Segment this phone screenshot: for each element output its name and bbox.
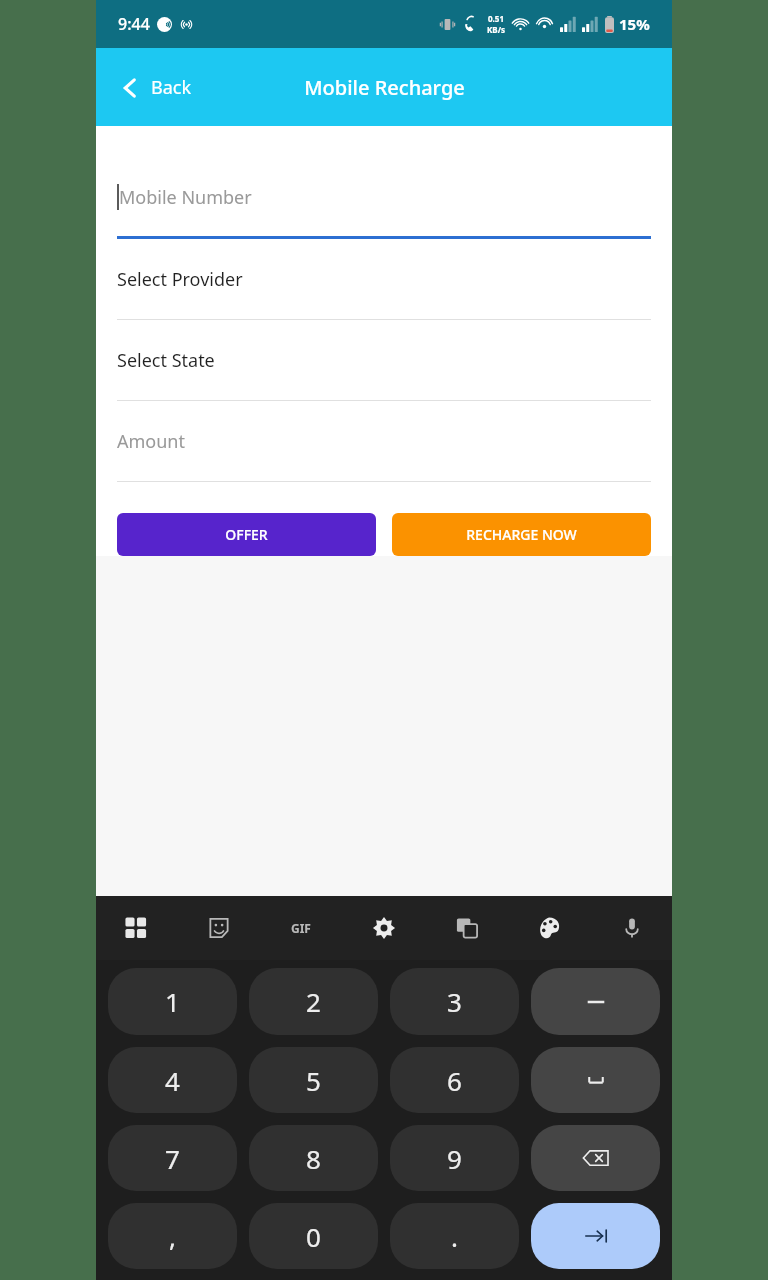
button[interactable]: Translate — [445, 906, 489, 950]
button[interactable]: Mobile Number — [96, 158, 672, 239]
button[interactable]: RECHARGE NOW — [392, 513, 651, 556]
button[interactable]: Space — [531, 1047, 660, 1113]
button[interactable]: 1 — [108, 968, 237, 1035]
button[interactable]: , — [108, 1203, 237, 1269]
staticText: 5 — [306, 1063, 321, 1098]
staticText: KB/s — [487, 24, 505, 35]
staticText: Mobile Recharge — [304, 74, 465, 101]
staticText: GIF — [291, 920, 311, 936]
staticText: 0 — [306, 1219, 321, 1254]
staticText: Select State — [117, 348, 215, 373]
staticText: 4 — [165, 1063, 180, 1098]
button[interactable]: Select Provider — [96, 239, 672, 320]
staticText: 6 — [447, 1063, 462, 1098]
button[interactable]: . — [390, 1203, 519, 1269]
staticText: 15% — [619, 14, 650, 34]
button[interactable]: Stickers — [197, 906, 241, 950]
button[interactable]: 0 — [249, 1203, 378, 1269]
button[interactable]: Amount — [96, 401, 672, 482]
staticText: Select Provider — [117, 267, 243, 292]
staticText: 1 — [165, 984, 180, 1019]
button[interactable]: Select State — [96, 320, 672, 401]
button[interactable]: Enter — [531, 1203, 660, 1269]
staticText: 0.51 — [488, 13, 504, 24]
staticText: 7 — [165, 1141, 180, 1176]
button[interactable]: 8 — [249, 1125, 378, 1191]
button[interactable]: Themes — [527, 906, 571, 950]
staticText: Back — [151, 75, 192, 100]
button[interactable]: 2 — [249, 968, 378, 1035]
staticText: 2 — [306, 984, 321, 1019]
button[interactable]: Keyboard switcher — [114, 906, 158, 950]
button[interactable]: Voice input — [610, 906, 654, 950]
staticText: Amount — [117, 429, 185, 454]
button[interactable]: 9 — [390, 1125, 519, 1191]
button[interactable]: GIF — [279, 906, 323, 950]
staticText: . — [451, 1219, 458, 1254]
staticText: 9:44 — [118, 13, 150, 35]
staticText: Mobile Number — [119, 185, 252, 210]
button[interactable]: 3 — [390, 968, 519, 1035]
staticText: 9 — [447, 1141, 462, 1176]
button[interactable]: Back — [96, 67, 208, 108]
button[interactable]: OFFER — [117, 513, 376, 556]
button[interactable]: 5 — [249, 1047, 378, 1113]
button[interactable]: 6 — [390, 1047, 519, 1113]
staticText: 8 — [306, 1141, 321, 1176]
button[interactable]: 4 — [108, 1047, 237, 1113]
button[interactable]: Settings — [362, 906, 406, 950]
staticText: 3 — [447, 984, 462, 1019]
staticText: OFFER — [225, 525, 268, 544]
button[interactable]: Dash — [531, 968, 660, 1035]
staticText: RECHARGE NOW — [466, 525, 577, 544]
button[interactable]: Backspace — [531, 1125, 660, 1191]
button[interactable]: 7 — [108, 1125, 237, 1191]
staticText: , — [169, 1219, 176, 1254]
